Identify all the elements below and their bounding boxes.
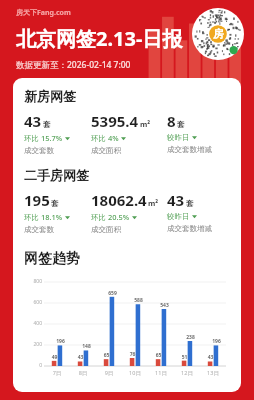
staticText: 543 [157, 302, 172, 309]
button[interactable]: 房天下 seal logo [192, 8, 244, 60]
staticText: 较昨日 [167, 133, 190, 142]
staticText: 较昨日 [167, 212, 190, 221]
staticText: 65 [152, 352, 165, 359]
staticText: 8日 [70, 369, 96, 377]
staticText: 0 [24, 362, 42, 369]
button[interactable]: 0 [24, 274, 230, 382]
staticText: 600 [24, 299, 42, 306]
staticText: 800 [24, 278, 42, 285]
staticText: 7日 [44, 369, 70, 377]
staticText: 环比 20.5% [91, 212, 130, 222]
staticText: 43 [24, 111, 42, 131]
staticText: 新房网签 [24, 88, 76, 104]
staticText: 588 [131, 297, 146, 304]
staticText: 环比 4% [91, 133, 119, 143]
staticText: 套 [51, 199, 59, 208]
staticText: 成交套数增减 [167, 224, 212, 233]
staticText: 148 [79, 343, 94, 350]
staticText: 5395.4 [91, 111, 139, 131]
staticText: 北京网签2.13-日报 [16, 25, 183, 52]
staticText: 76 [126, 351, 139, 358]
staticText: 房 [213, 27, 224, 41]
staticText: 数据更新至：2026-02-14 7:00 [16, 59, 131, 71]
staticText: 9日 [96, 369, 122, 377]
staticText: 400 [24, 320, 42, 327]
staticText: 环比 18.1% [24, 212, 63, 222]
staticText: 套 [43, 120, 51, 129]
staticText: 196 [53, 338, 68, 345]
button[interactable]: 二手房网签 [24, 167, 230, 234]
staticText: 12日 [174, 369, 200, 377]
staticText: 49 [48, 354, 61, 361]
staticText: 成交套数增减 [167, 145, 212, 154]
staticText: m² [140, 119, 151, 129]
staticText: 13日 [200, 369, 226, 377]
staticText: 43 [74, 354, 87, 361]
staticText: 43 [167, 190, 185, 210]
staticText: 238 [183, 334, 198, 341]
staticText: 网签趋势 [24, 250, 80, 268]
staticText: 套 [186, 199, 194, 208]
staticText: 成交套数 [24, 146, 54, 155]
staticText: 65 [100, 352, 113, 359]
staticText: 18062.4 [91, 190, 147, 210]
staticText: 成交套数 [24, 225, 54, 234]
staticText: 195 [24, 190, 50, 210]
staticText: 11日 [148, 369, 174, 377]
staticText: 43 [204, 354, 217, 361]
staticText: 成交面积 [91, 225, 121, 234]
staticText: 659 [105, 290, 120, 297]
staticText: 环比 15.7% [24, 133, 63, 143]
staticText: 二手房网签 [24, 167, 89, 183]
staticText: 10日 [122, 369, 148, 377]
staticText: 成交面积 [91, 146, 121, 155]
staticText: 套 [177, 120, 185, 129]
button[interactable]: 新房网签 [24, 88, 230, 155]
staticText: 房天下Fang.com [16, 8, 71, 18]
staticText: m² [148, 198, 159, 208]
staticText: 8 [167, 111, 176, 131]
staticText: 196 [209, 338, 224, 345]
staticText: 200 [24, 341, 42, 348]
staticText: 51 [178, 354, 191, 361]
